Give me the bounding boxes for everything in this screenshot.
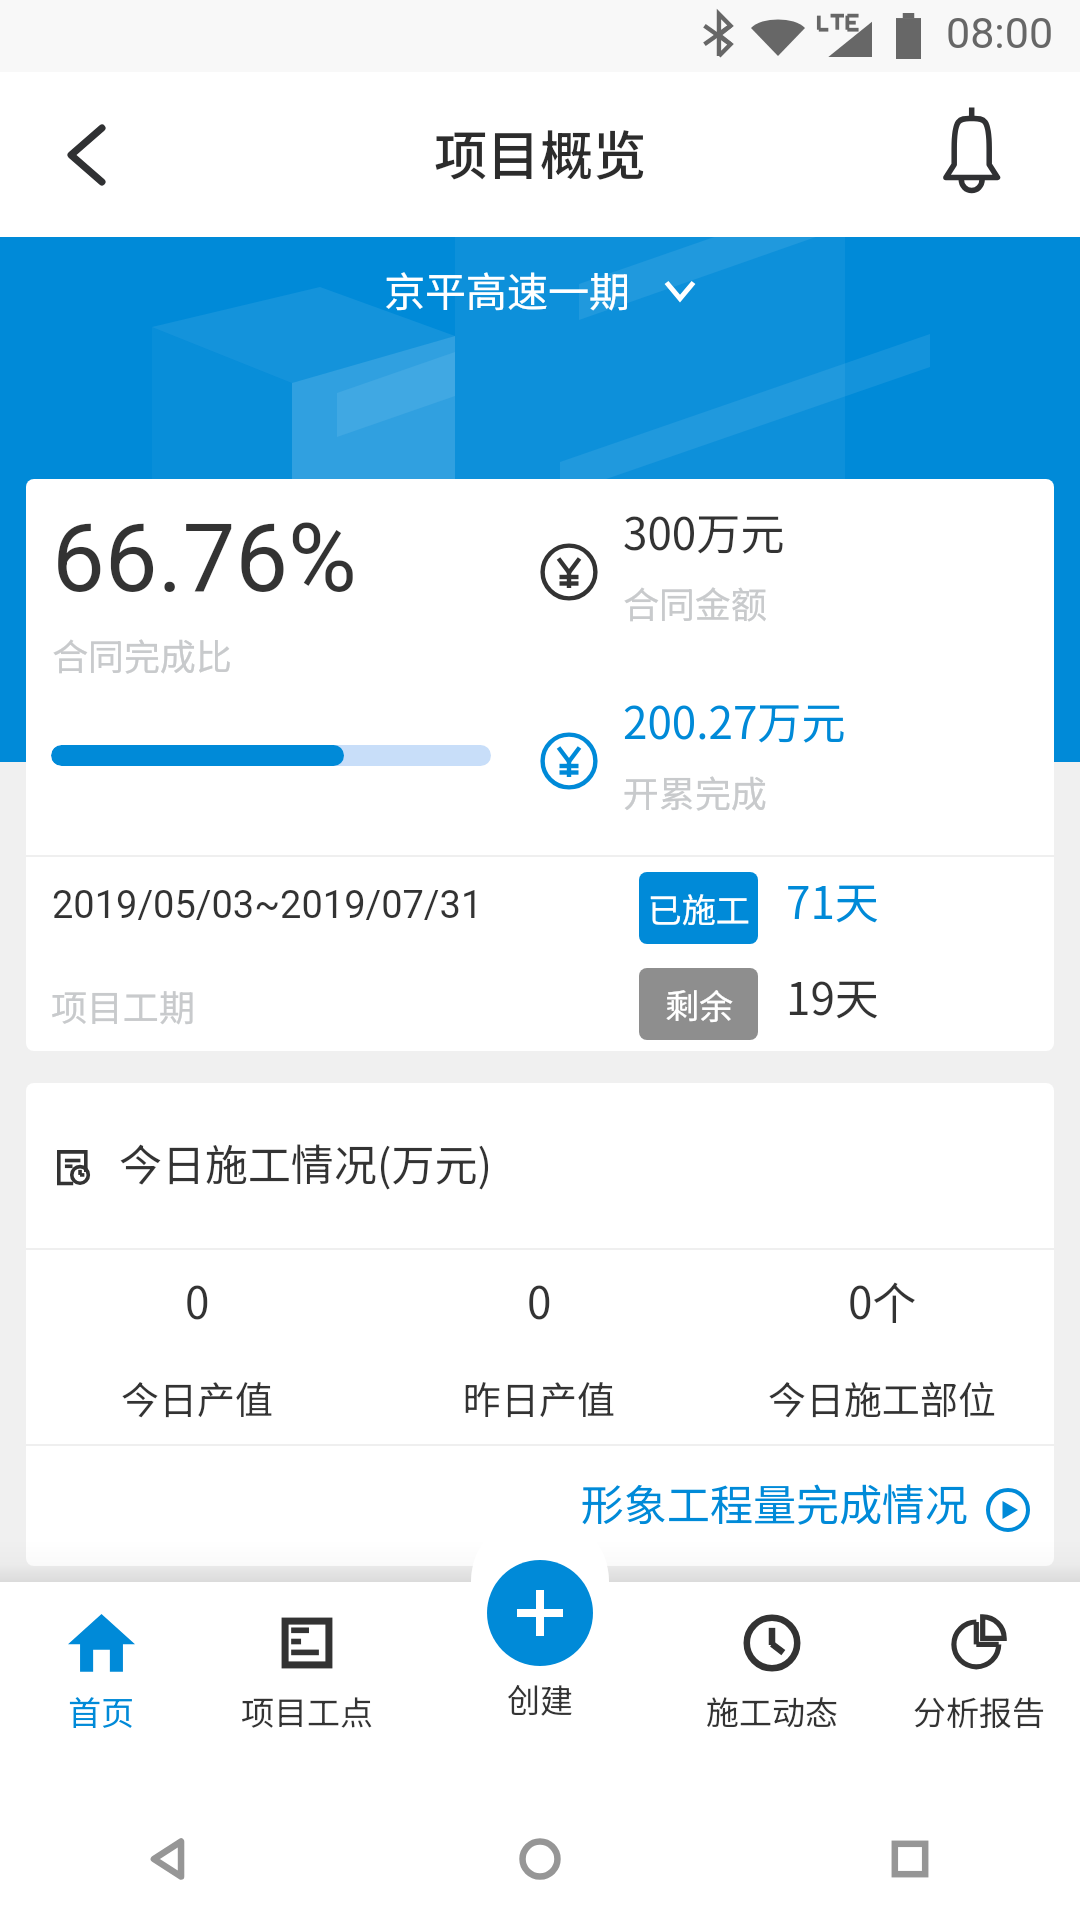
button[interactable]: Back xyxy=(120,1809,220,1909)
button[interactable]: 创建 xyxy=(487,1560,593,1666)
staticText: 2019/05/03~2019/07/31 xyxy=(52,883,483,928)
button[interactable]: 已施工 xyxy=(639,872,758,944)
button[interactable]: Notifications xyxy=(930,72,1080,237)
staticText: 今日产值 xyxy=(121,1370,274,1425)
button[interactable]: 形象工程量完成情况 xyxy=(26,1446,1054,1566)
button[interactable]: 0 xyxy=(368,1250,711,1444)
button[interactable]: 0 xyxy=(26,1250,368,1444)
staticText: 300万元 xyxy=(623,499,785,563)
button[interactable]: 创建 xyxy=(432,1582,648,1798)
staticText: 昨日产值 xyxy=(463,1370,616,1425)
button[interactable]: 剩余 xyxy=(639,968,758,1040)
staticText: 71天 xyxy=(786,868,879,932)
staticText: 合同金额 xyxy=(623,576,768,628)
staticText: 200.27万元 xyxy=(623,688,846,752)
staticText: 项目工期 xyxy=(51,979,196,1031)
staticText: 今日施工部位 xyxy=(768,1370,997,1425)
staticText: 施工动态 xyxy=(706,1687,838,1735)
button[interactable]: Recents xyxy=(860,1809,960,1909)
staticText: 创建 xyxy=(507,1675,573,1723)
button[interactable]: 首页 xyxy=(0,1582,209,1798)
button[interactable]: 0个 xyxy=(711,1250,1054,1444)
button[interactable]: 施工动态 xyxy=(664,1582,880,1798)
staticText: 合同完成比 xyxy=(52,628,233,680)
button[interactable]: Back xyxy=(0,72,160,237)
staticText: 形象工程量完成情况 xyxy=(581,1471,968,1533)
button[interactable]: 分析报告 xyxy=(871,1582,1080,1798)
staticText: 项目工点 xyxy=(241,1687,373,1735)
button[interactable]: 京平高速一期 xyxy=(384,259,696,318)
staticText: 08:00 xyxy=(946,8,1054,58)
staticText: 京平高速一期 xyxy=(384,259,630,318)
staticText: 剩余 xyxy=(665,980,733,1029)
button[interactable]: 项目工点 xyxy=(199,1582,415,1798)
staticText: 0个 xyxy=(848,1268,917,1332)
staticText: 0 xyxy=(527,1268,552,1332)
staticText: 分析报告 xyxy=(913,1687,1045,1735)
staticText: 开累完成 xyxy=(623,765,768,817)
staticText: 首页 xyxy=(68,1687,134,1735)
staticText: 已施工 xyxy=(648,884,750,933)
button[interactable]: Home xyxy=(490,1809,590,1909)
staticText: 66.76% xyxy=(52,504,357,614)
staticText: 0 xyxy=(185,1268,210,1332)
staticText: 今日施工情况(万元) xyxy=(119,1131,493,1193)
staticText: 19天 xyxy=(786,964,879,1028)
staticText: 项目概览 xyxy=(434,114,646,191)
